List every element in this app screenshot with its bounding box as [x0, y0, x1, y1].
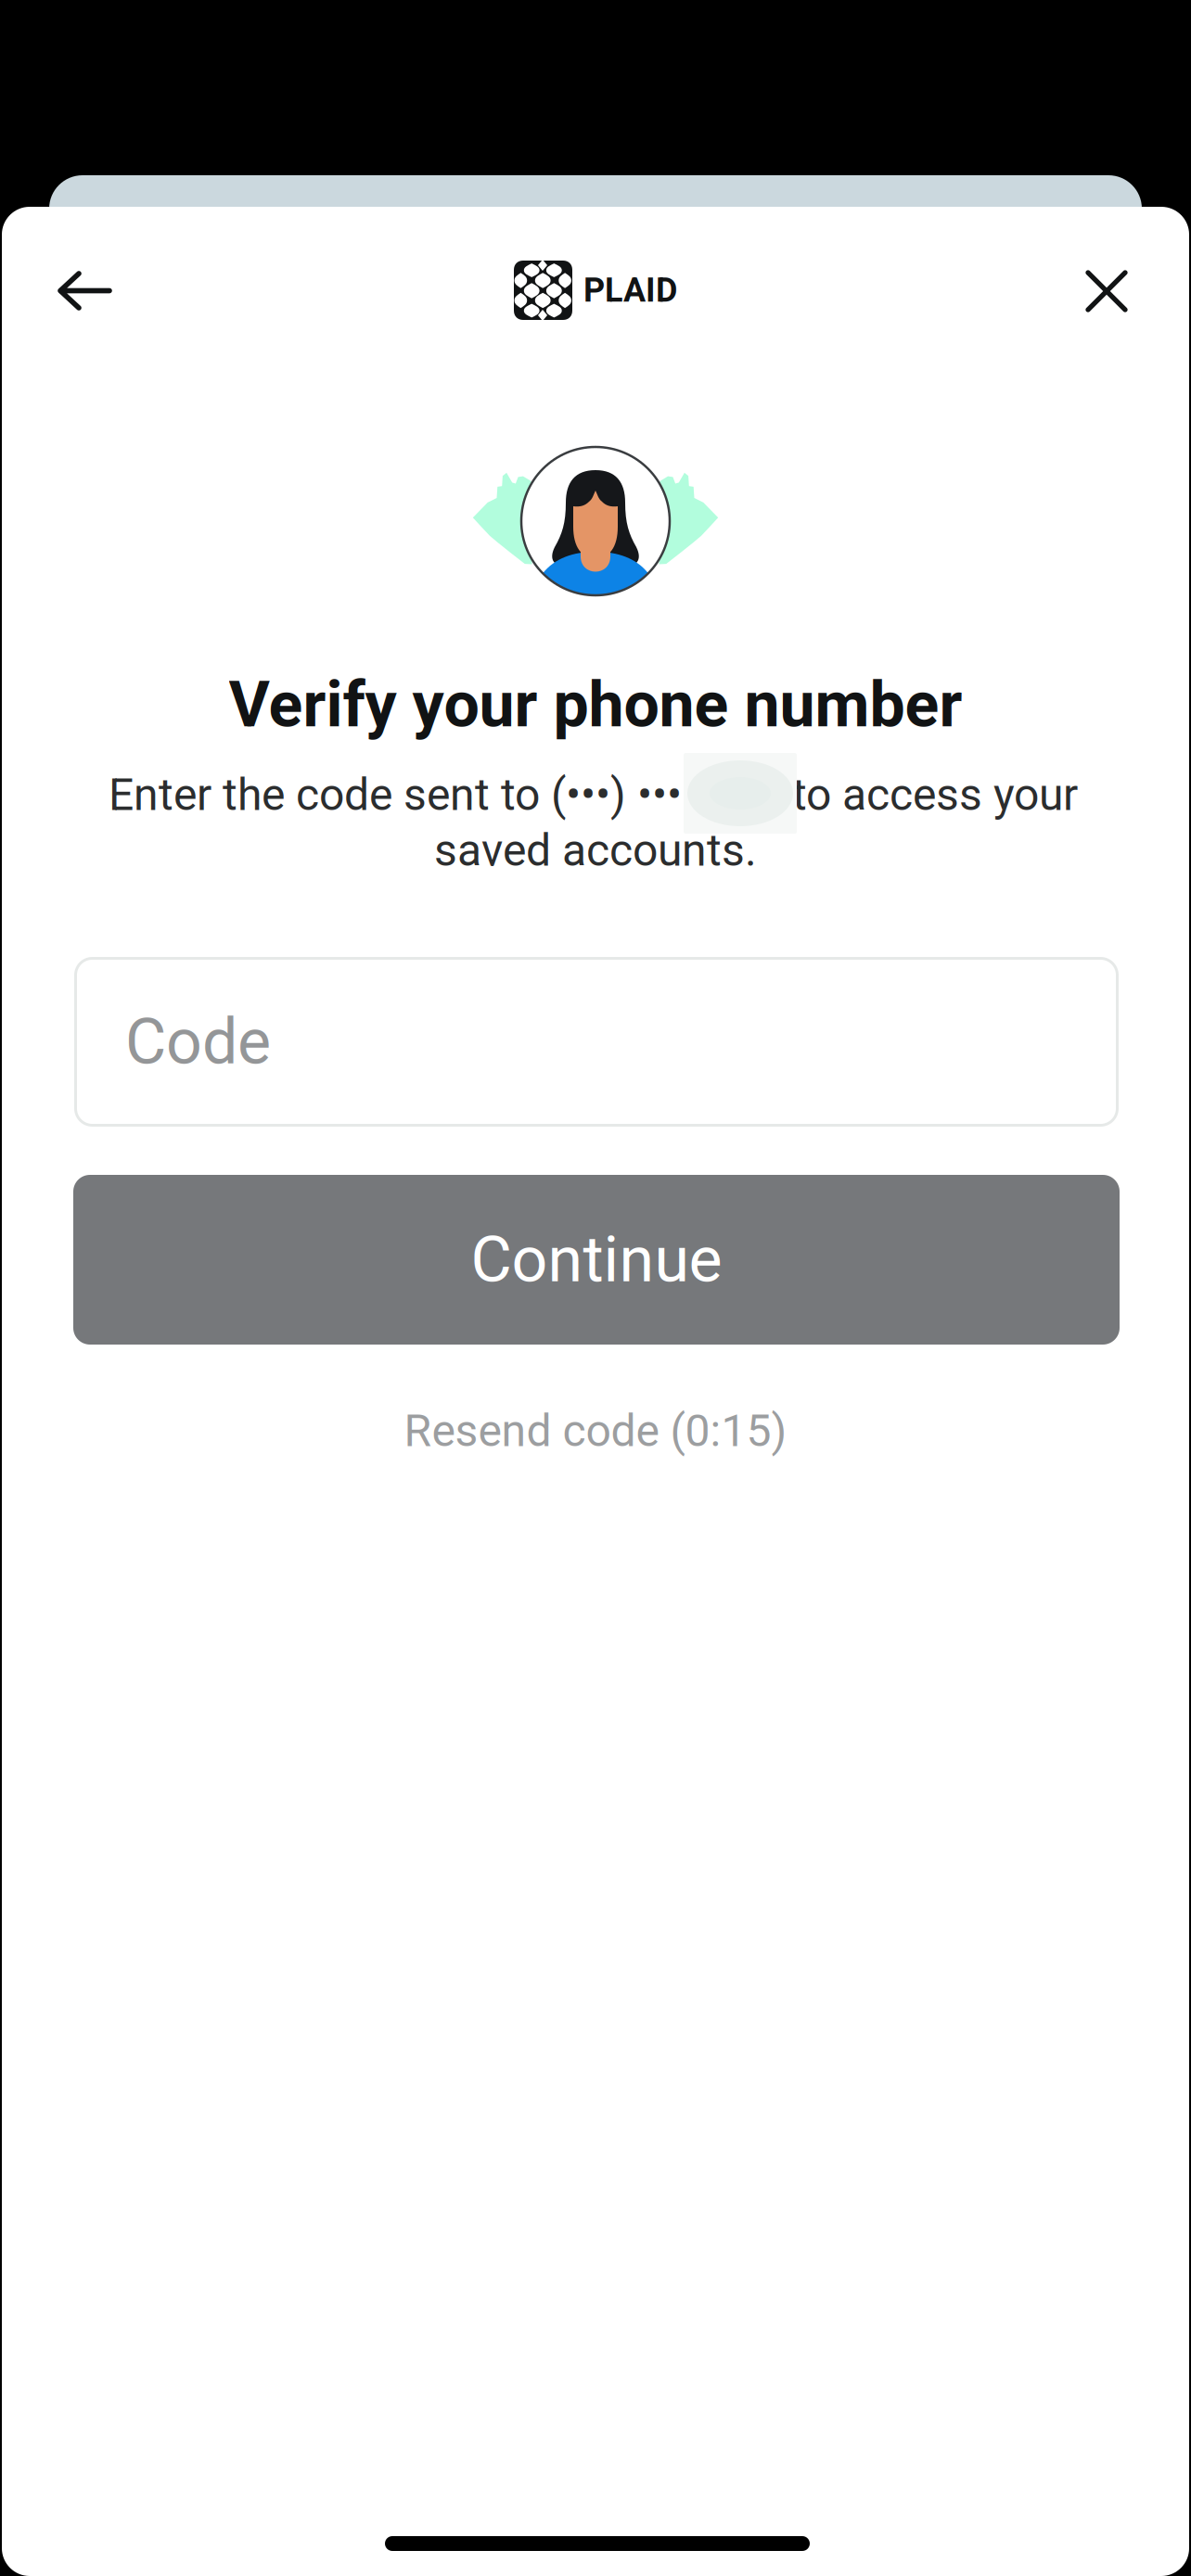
staticText: Enter the code sent to (•••) •••: [109, 769, 682, 821]
button[interactable]: Continue: [73, 1175, 1120, 1345]
staticText: saved accounts.: [434, 824, 757, 876]
button[interactable]: Code: [74, 957, 1119, 1127]
button[interactable]: Back: [30, 240, 139, 342]
staticText: to access your: [792, 769, 1078, 821]
staticText: Continue: [471, 1223, 722, 1297]
staticText: PLAID: [583, 271, 677, 310]
button[interactable]: Close: [1056, 240, 1158, 342]
staticText: Code: [125, 1005, 271, 1079]
staticText: Verify your phone number: [229, 668, 962, 742]
staticText: Resend code (0:15): [404, 1405, 787, 1457]
button[interactable]: Resend code (0:15): [271, 1398, 920, 1463]
